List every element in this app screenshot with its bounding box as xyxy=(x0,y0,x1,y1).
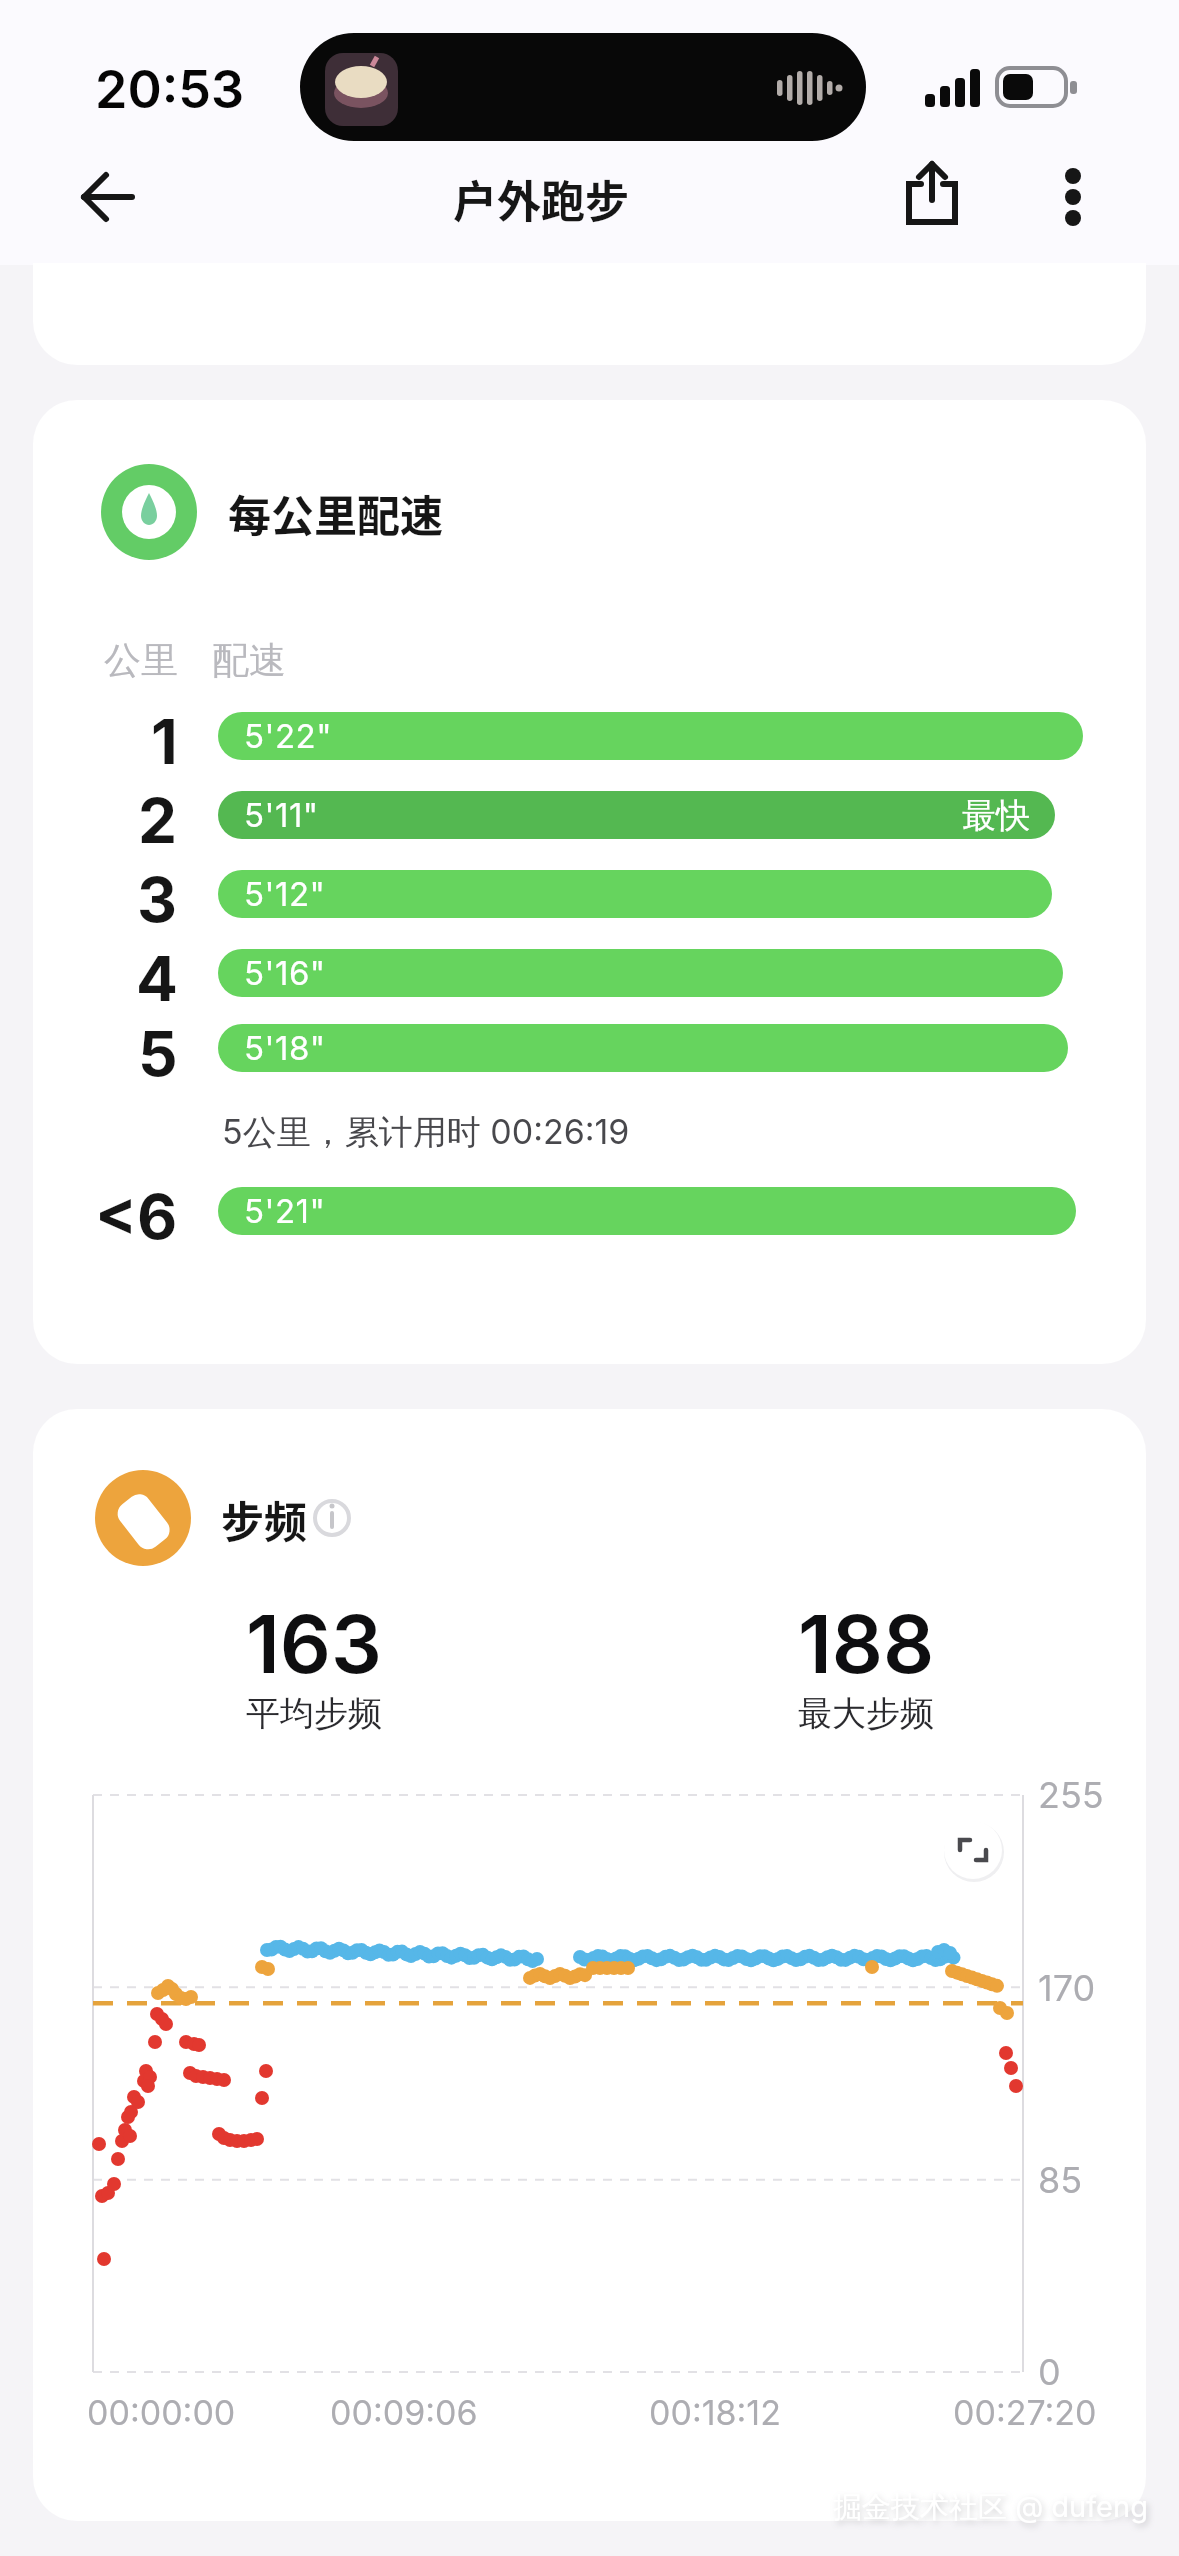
staticText: 1 xyxy=(151,704,178,768)
staticText: 5 xyxy=(138,1016,178,1080)
staticText: 配速 xyxy=(212,637,286,684)
staticText: 163 xyxy=(246,1595,382,1687)
button[interactable] xyxy=(60,157,150,237)
staticText: 5'16" xyxy=(244,953,326,993)
staticText: 85 xyxy=(1038,2158,1083,2202)
staticText: 户外跑步 xyxy=(453,167,629,227)
staticText: 掘金技术社区 @ dufeng xyxy=(833,2489,1148,2526)
staticText: 00:00:00 xyxy=(87,2392,236,2433)
staticText: 步频 xyxy=(221,1488,307,1548)
staticText: 公里 xyxy=(104,637,178,684)
staticText: 5'18" xyxy=(244,1028,326,1068)
button[interactable] xyxy=(299,1501,349,1541)
staticText: 每公里配速 xyxy=(228,482,443,542)
staticText: 最大步频 xyxy=(798,1692,934,1735)
staticText: 20:53 xyxy=(95,58,245,118)
staticText: 170 xyxy=(1038,1966,1096,2010)
staticText: 3 xyxy=(137,862,178,926)
staticText: 255 xyxy=(1038,1773,1104,1817)
staticText: 最快 xyxy=(962,794,1030,837)
staticText: 5'21" xyxy=(244,1191,326,1231)
staticText: 0 xyxy=(1038,2350,1061,2394)
staticText: 平均步频 xyxy=(246,1692,382,1735)
staticText: 2 xyxy=(138,783,178,847)
staticText: 188 xyxy=(798,1595,935,1687)
staticText: 5公里，累计用时 00:26:19 xyxy=(222,1111,630,1154)
staticText: 5'12" xyxy=(244,874,326,914)
staticText: 00:27:20 xyxy=(953,2392,1097,2433)
button[interactable] xyxy=(885,150,980,245)
staticText: 4 xyxy=(136,941,178,1005)
staticText: 00:09:06 xyxy=(330,2392,478,2433)
staticText: 00:18:12 xyxy=(649,2392,781,2433)
staticText: <6 xyxy=(95,1179,178,1243)
button[interactable] xyxy=(1035,150,1115,245)
staticText: 5'22" xyxy=(244,716,333,756)
staticText: 5'11" xyxy=(244,795,319,835)
